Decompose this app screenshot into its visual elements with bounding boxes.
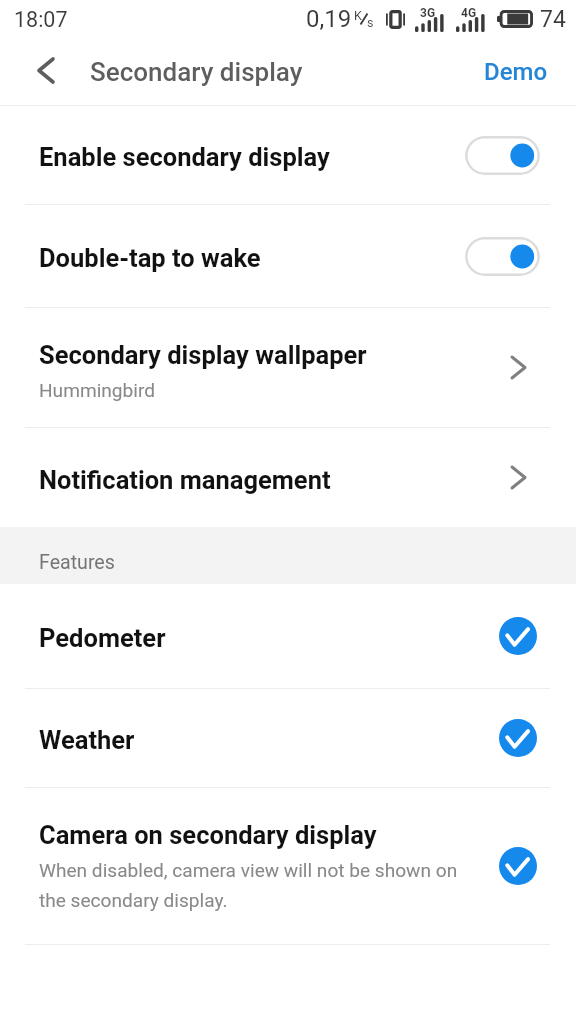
button[interactable]: Enable secondary display xyxy=(0,106,576,204)
staticText: K xyxy=(354,8,362,23)
staticText: 18:07 xyxy=(14,7,68,32)
button[interactable]: Back xyxy=(0,38,70,105)
staticText: 74 xyxy=(540,6,566,33)
staticText: Hummingbird xyxy=(39,379,155,401)
staticText: 3G xyxy=(420,6,436,20)
staticText: Features xyxy=(39,551,115,574)
staticText: Weather xyxy=(39,725,135,755)
button[interactable]: Pedometer xyxy=(0,584,576,688)
staticText: s xyxy=(367,15,374,30)
staticText: Demo xyxy=(484,58,548,86)
staticText: Secondary display wallpaper xyxy=(39,340,367,370)
staticText: Double-tap to wake xyxy=(39,243,465,273)
button[interactable]: Camera on secondary display xyxy=(0,788,576,944)
button[interactable]: Secondary display wallpaper xyxy=(0,308,576,427)
staticText: Camera on secondary display xyxy=(39,820,377,850)
staticText: Secondary display xyxy=(90,57,303,87)
staticText: When disabled, camera view will not be s… xyxy=(39,859,458,911)
staticText: Notification management xyxy=(39,465,331,495)
button[interactable]: Weather xyxy=(0,689,576,787)
staticText: 0,19 xyxy=(306,5,352,33)
staticText: Pedometer xyxy=(39,623,166,653)
button[interactable]: Double-tap to wake xyxy=(0,205,576,307)
button[interactable]: Demo xyxy=(460,38,576,105)
button[interactable]: Notification management xyxy=(0,428,576,527)
button[interactable]: Toggle xyxy=(465,136,540,175)
button[interactable]: Toggle xyxy=(465,237,540,276)
button[interactable]: Enabled xyxy=(499,617,537,655)
button[interactable]: Enabled xyxy=(499,847,537,885)
staticText: Enable secondary display xyxy=(39,142,465,172)
button[interactable]: Enabled xyxy=(499,719,537,757)
staticText: 4G xyxy=(461,6,477,20)
